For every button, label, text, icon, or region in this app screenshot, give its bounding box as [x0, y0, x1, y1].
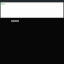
button[interactable]: Account [0, 3, 5, 5]
button[interactable] [0, 5, 64, 18]
